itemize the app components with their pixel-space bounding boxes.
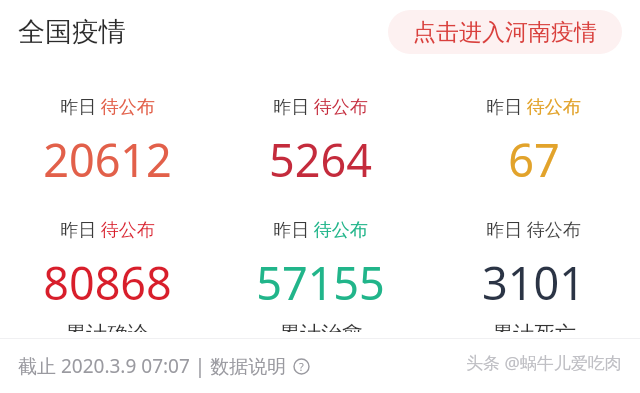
staticText: 57155	[256, 252, 385, 313]
staticText: 80868	[43, 252, 172, 313]
staticText: 头条 @蜗牛儿爱吃肉	[466, 351, 622, 374]
button[interactable]: 点击进入河南疫情	[388, 10, 622, 54]
staticText: 累计死亡	[492, 321, 576, 332]
button[interactable]: 截止 2020.3.9 07:07 | 数据说明	[18, 353, 310, 379]
other: 数据说明帮助	[293, 358, 310, 375]
button[interactable]: 昨日 待公布	[0, 217, 214, 332]
staticText: 昨日 待公布	[60, 217, 155, 242]
staticText: 累计治愈	[279, 321, 363, 332]
staticText: 昨日 待公布	[273, 217, 368, 242]
button[interactable]: 昨日 待公布	[0, 94, 214, 199]
staticText: 昨日 待公布	[486, 217, 581, 242]
staticText: ?	[299, 359, 304, 374]
button[interactable]: 昨日 待公布	[214, 217, 427, 332]
staticText: 昨日 待公布	[60, 94, 155, 119]
staticText: 昨日 待公布	[273, 94, 368, 119]
staticText: 3101	[482, 252, 585, 313]
button[interactable]: 昨日 待公布	[427, 217, 640, 332]
staticText: 点击进入河南疫情	[413, 18, 597, 47]
staticText: 截止 2020.3.9 07:07 | 数据说明	[18, 353, 287, 379]
staticText: 昨日 待公布	[486, 94, 581, 119]
button[interactable]: 昨日 待公布	[427, 94, 640, 199]
staticText: 累计确诊	[65, 321, 149, 332]
staticText: 5264	[269, 129, 372, 190]
button[interactable]: 昨日 待公布	[214, 94, 427, 199]
button[interactable]: 全国疫情	[18, 15, 126, 49]
staticText: 20612	[43, 129, 172, 190]
staticText: 67	[508, 129, 560, 190]
